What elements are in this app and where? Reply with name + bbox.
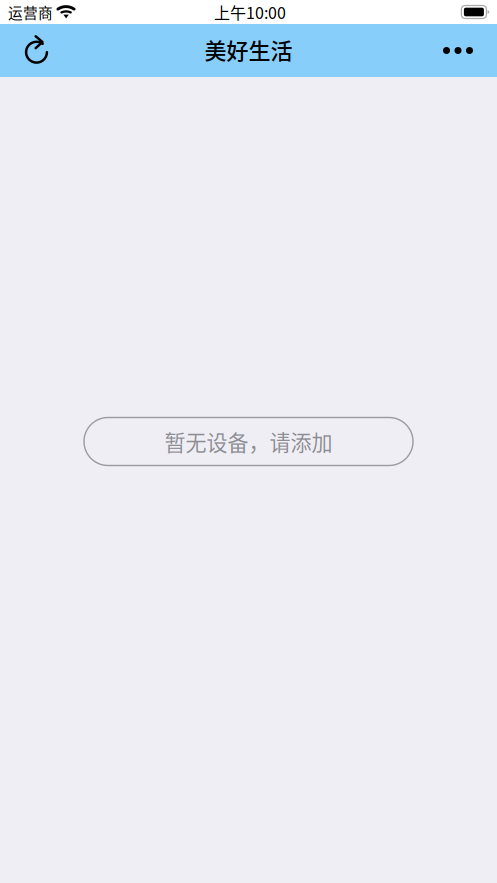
button[interactable]: 暂无设备，请添加	[84, 417, 413, 465]
staticText: 运营商	[8, 1, 53, 23]
button[interactable]: 刷新	[13, 24, 62, 77]
staticText: 暂无设备，请添加	[164, 426, 332, 457]
button[interactable]: 更多	[431, 24, 485, 77]
staticText: 美好生活	[204, 34, 292, 65]
staticText: 上午10:00	[214, 0, 286, 24]
